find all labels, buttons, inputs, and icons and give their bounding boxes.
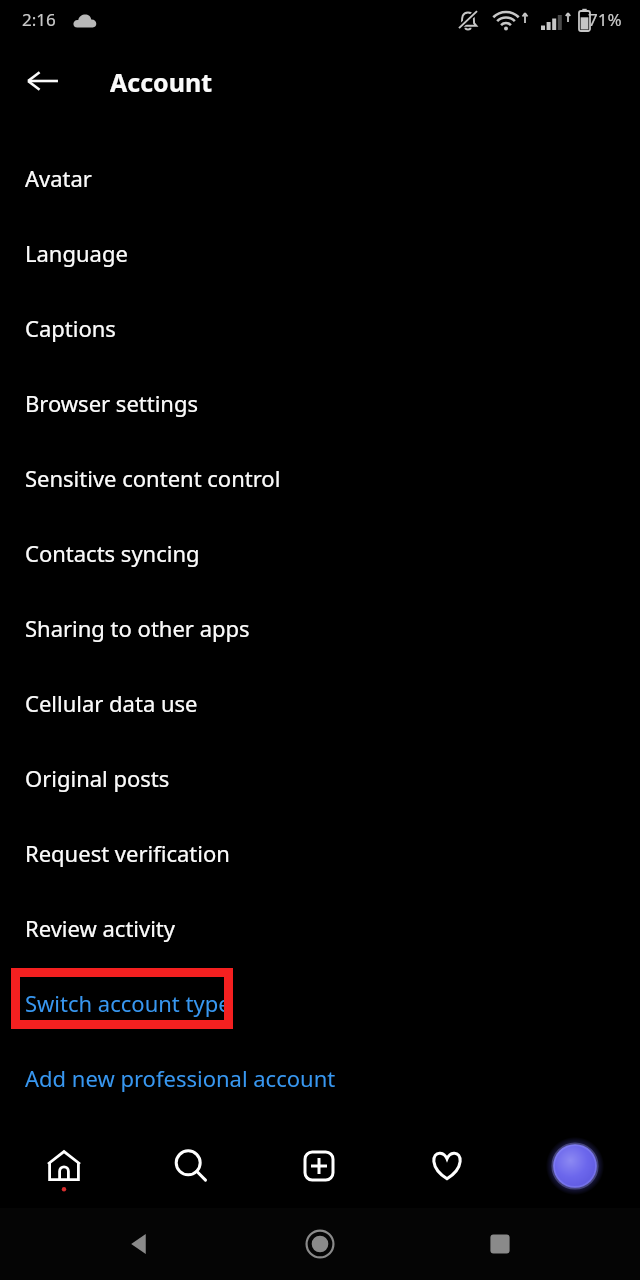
button[interactable]: Back [100, 1214, 180, 1274]
button[interactable]: Profile [535, 1126, 615, 1206]
staticText: Cellular data use [25, 688, 198, 718]
staticText: Language [25, 238, 128, 268]
staticText: Switch account type [25, 988, 231, 1018]
button[interactable]: Recent apps [460, 1214, 540, 1274]
button[interactable]: Cellular data use [0, 665, 640, 740]
staticText: Browser settings [25, 388, 199, 418]
button[interactable]: Captions [0, 290, 640, 365]
button[interactable]: Home [24, 1126, 104, 1206]
button[interactable]: Avatar [0, 140, 640, 215]
button[interactable]: Home [280, 1214, 360, 1274]
staticText: Review activity [25, 913, 176, 943]
button[interactable]: Sharing to other apps [0, 590, 640, 665]
staticText: 2:16 [22, 8, 56, 31]
button[interactable]: Search [151, 1126, 231, 1206]
staticText: Add new professional account [25, 1063, 336, 1093]
staticText: Original posts [25, 763, 170, 793]
staticText: Avatar [25, 163, 92, 193]
button[interactable]: Original posts [0, 740, 640, 815]
button[interactable]: Activity [407, 1126, 487, 1206]
staticText: 71% [588, 8, 622, 31]
staticText: Sharing to other apps [25, 613, 250, 643]
button[interactable]: Switch account type [0, 965, 640, 1040]
button[interactable]: Sensitive content control [0, 440, 640, 515]
button[interactable]: Review activity [0, 890, 640, 965]
button[interactable]: Request verification [0, 815, 640, 890]
staticText: Account [110, 65, 213, 99]
button[interactable]: Language [0, 215, 640, 290]
staticText: Captions [25, 313, 116, 343]
button[interactable]: Contacts syncing [0, 515, 640, 590]
button[interactable]: Add new professional account [0, 1040, 640, 1115]
button[interactable]: Create [279, 1126, 359, 1206]
staticText: Sensitive content control [25, 463, 281, 493]
staticText: Request verification [25, 838, 230, 868]
button[interactable]: Browser settings [0, 365, 640, 440]
staticText: Contacts syncing [25, 538, 200, 568]
button[interactable]: Back [14, 52, 72, 110]
